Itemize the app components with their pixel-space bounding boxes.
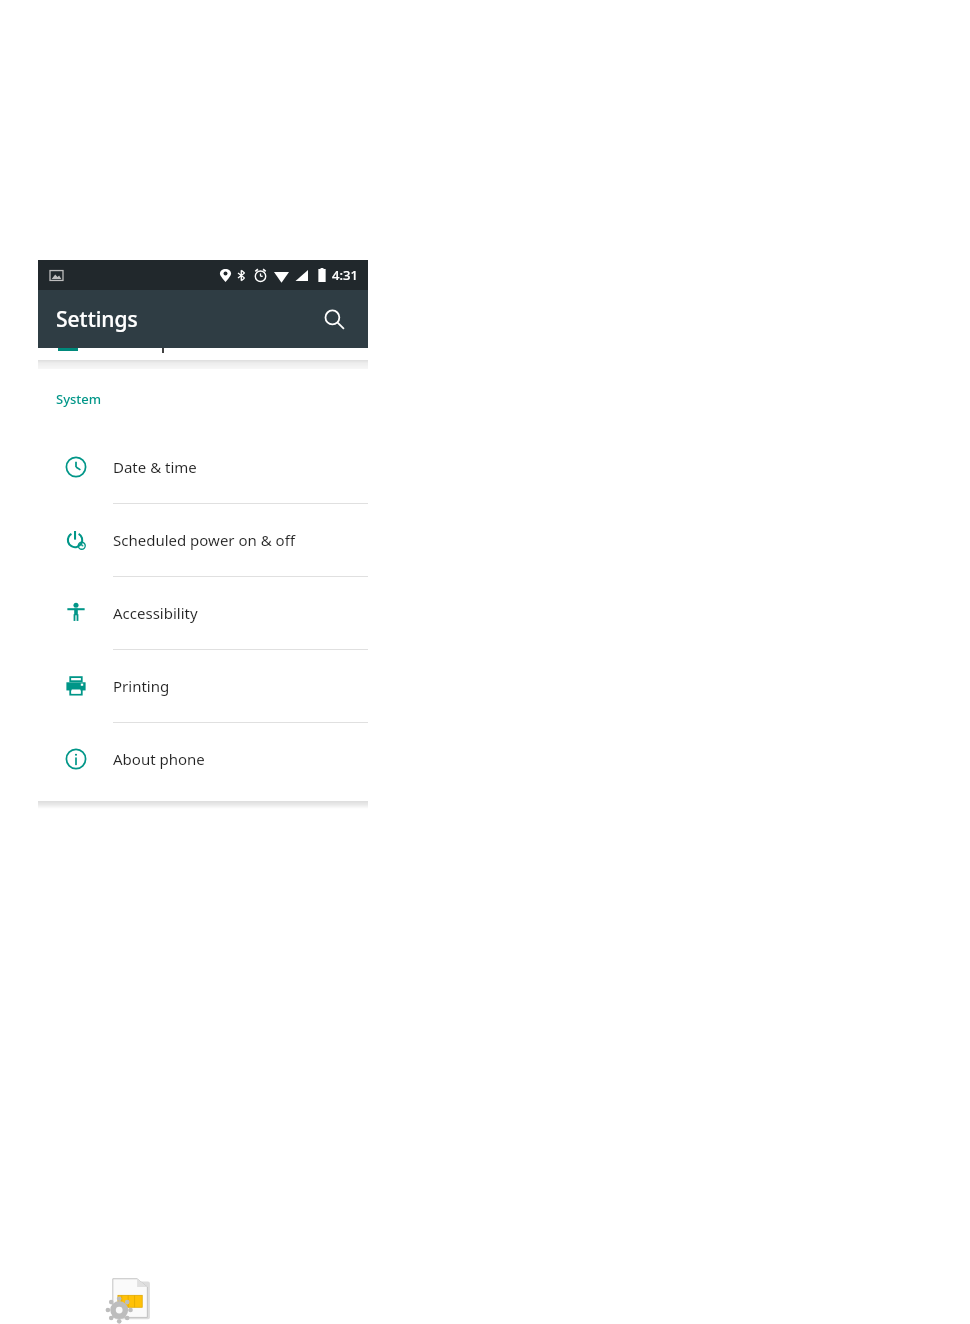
- button[interactable]: Printing: [38, 650, 368, 722]
- staticText: About phone: [113, 749, 205, 769]
- staticText: Scheduled power on & off: [113, 530, 295, 550]
- staticText: Settings: [56, 305, 138, 334]
- button[interactable]: Scheduled power on & off: [38, 504, 368, 576]
- button[interactable]: Search: [314, 299, 354, 339]
- staticText: 4:31: [332, 266, 358, 284]
- staticText: Date & time: [113, 457, 197, 477]
- button[interactable]: Date & time: [38, 431, 368, 503]
- staticText: System: [56, 390, 102, 408]
- button[interactable]: Accessibility: [38, 577, 368, 649]
- button[interactable]: About phone: [38, 723, 368, 795]
- staticText: Accessibility: [113, 603, 198, 623]
- staticText: Printing: [113, 676, 170, 696]
